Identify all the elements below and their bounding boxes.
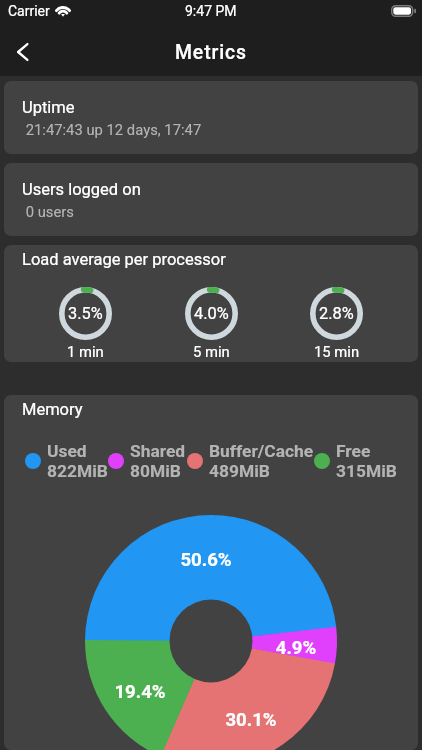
staticText: Shared (130, 441, 186, 461)
button[interactable]: Uptime (4, 81, 418, 154)
staticText: Buffer/Cache (209, 441, 314, 461)
staticText: 21:47:43 up 12 days, 17:47 (22, 121, 202, 138)
staticText: 9:47 PM (185, 3, 237, 19)
staticText: 3.5% (68, 304, 103, 323)
staticText: 822MiB (47, 461, 108, 481)
staticText: 50.6% (166, 549, 246, 571)
staticText: 5 min (193, 343, 230, 360)
staticText: Metrics (175, 41, 247, 64)
staticText: Carrier (8, 3, 50, 19)
staticText: 80MiB (130, 461, 181, 481)
staticText: 315MiB (336, 461, 397, 481)
button[interactable]: Load average per processor (4, 245, 418, 362)
staticText: 0 users (22, 203, 74, 220)
staticText: 1 min (67, 343, 104, 360)
staticText: Uptime (22, 98, 75, 117)
button[interactable]: Users logged on (4, 163, 418, 236)
staticText: Load average per processor (22, 250, 226, 269)
staticText: 2.8% (319, 304, 354, 323)
staticText: Free (336, 441, 371, 461)
staticText: Used (47, 441, 87, 461)
staticText: 4.0% (194, 304, 229, 323)
staticText: 4.9% (256, 637, 336, 659)
staticText: Memory (22, 400, 83, 419)
staticText: 489MiB (209, 461, 270, 481)
staticText: Users logged on (22, 180, 141, 199)
staticText: 15 min (314, 343, 360, 360)
button[interactable]: Back (0, 29, 46, 75)
staticText: 30.1% (211, 709, 291, 731)
staticText: 19.4% (100, 681, 180, 703)
